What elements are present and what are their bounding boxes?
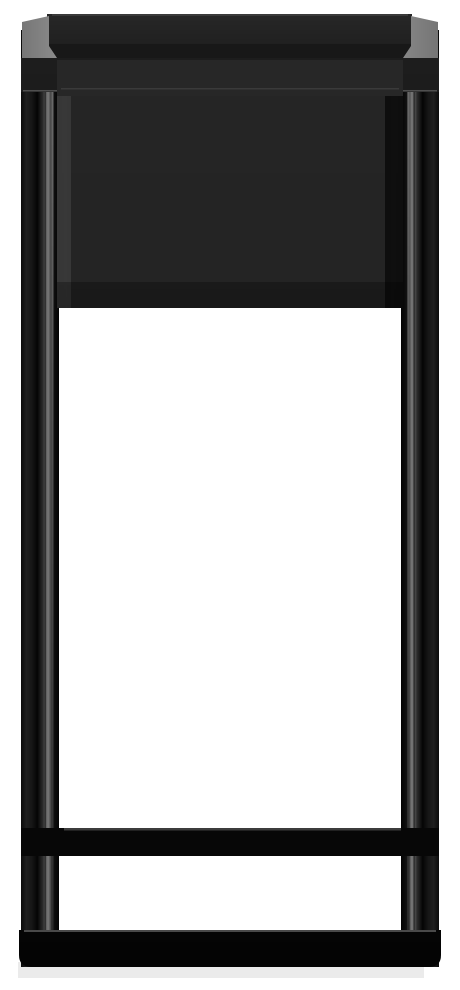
button[interactable]: Black metal planter stand product photo — [0, 0, 460, 990]
